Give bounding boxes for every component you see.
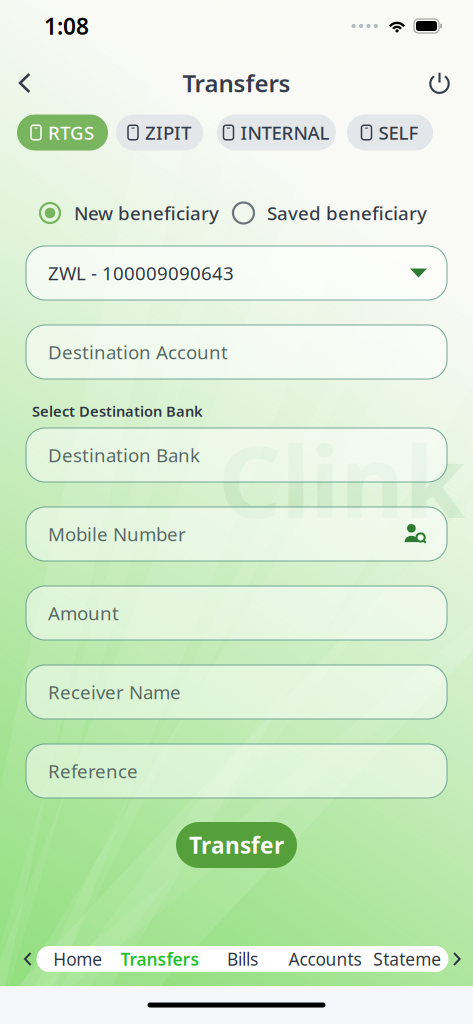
staticText: Transfers (182, 67, 290, 99)
button[interactable]: Bills (201, 946, 284, 972)
staticText: Mobile Number (48, 522, 186, 546)
button[interactable]: Previous tabs (19, 946, 36, 972)
staticText: ZWL - 100009090643 (48, 261, 234, 285)
button[interactable]: SELF (347, 114, 433, 150)
staticText: Destination Bank (48, 443, 200, 467)
button[interactable]: Mobile Number (26, 507, 447, 561)
staticText: Reference (48, 759, 138, 783)
staticText: Bills (227, 947, 258, 970)
staticText: ZIPIT (145, 120, 191, 145)
button[interactable]: RTGS (17, 114, 108, 150)
button[interactable]: Stateme (366, 946, 448, 972)
button[interactable]: More tabs (448, 946, 465, 972)
button[interactable]: Reference (26, 744, 447, 798)
staticText: Transfers (121, 947, 200, 970)
button[interactable]: Amount (26, 586, 447, 640)
staticText: Receiver Name (48, 680, 181, 704)
button[interactable]: Log out (421, 64, 459, 102)
button[interactable]: ZIPIT (116, 114, 203, 150)
button[interactable]: Back (6, 64, 44, 102)
button[interactable]: Transfers (119, 946, 201, 972)
staticText: Accounts (288, 947, 361, 970)
button[interactable]: ZWL - 100009090643 (26, 246, 447, 300)
staticText: Clink (218, 414, 465, 545)
button[interactable]: Destination Bank (26, 428, 447, 482)
staticText: Amount (48, 601, 119, 625)
staticText: Home (53, 947, 102, 970)
staticText: 1:08 (44, 11, 89, 41)
button[interactable]: Transfer (176, 822, 297, 868)
staticText: Transfer (189, 830, 284, 860)
button[interactable]: Accounts (284, 946, 366, 972)
staticText: RTGS (48, 120, 94, 145)
staticText: Saved beneficiary (267, 201, 427, 225)
staticText: Destination Account (48, 340, 228, 364)
staticText: Select Destination Bank (32, 401, 203, 421)
button[interactable]: Receiver Name (26, 665, 447, 719)
staticText: Stateme (373, 947, 441, 970)
staticText: INTERNAL (240, 120, 329, 145)
staticText: New beneficiary (74, 201, 219, 225)
button[interactable]: INTERNAL (217, 114, 336, 150)
button[interactable]: Saved beneficiary (233, 201, 427, 225)
staticText: SELF (378, 120, 418, 145)
button[interactable]: Destination Account (26, 325, 447, 379)
button[interactable]: Home (36, 946, 119, 972)
button[interactable]: New beneficiary (40, 201, 219, 225)
